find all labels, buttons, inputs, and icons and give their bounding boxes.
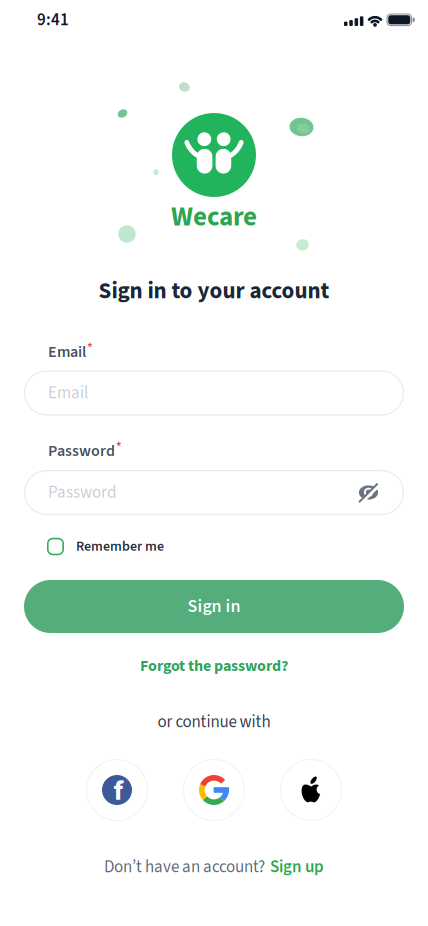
staticText: Forgot the password?	[140, 655, 288, 677]
staticText: Remember me	[76, 537, 164, 556]
staticText: Sign in	[187, 594, 240, 619]
button[interactable]: Remember me	[47, 537, 164, 556]
staticText: *	[116, 438, 122, 456]
staticText: Sign in to your account	[98, 275, 329, 307]
button[interactable]: Continue with Apple	[280, 759, 342, 821]
staticText: Email	[48, 341, 86, 363]
staticText: Sign up	[270, 855, 324, 879]
staticText: Password	[48, 440, 115, 462]
button[interactable]: Continue with Google	[183, 759, 245, 821]
staticText: or continue with	[157, 710, 270, 734]
button[interactable]: Sign up	[270, 855, 324, 879]
staticText: Password	[48, 481, 116, 504]
staticText: *	[87, 339, 93, 357]
staticText: Wecare	[171, 198, 257, 236]
button[interactable]: Forgot the password?	[140, 655, 288, 677]
staticText: Email	[48, 381, 88, 405]
staticText: 9:41	[37, 8, 69, 32]
button[interactable]: Continue with Facebook	[86, 759, 148, 821]
button[interactable]: Password	[24, 470, 404, 515]
button[interactable]: Sign in	[24, 580, 404, 633]
staticText: Don’t have an account?	[104, 855, 265, 879]
staticText: f	[113, 772, 123, 810]
button[interactable]: Email	[24, 370, 404, 415]
button[interactable]: Show password	[347, 471, 389, 513]
